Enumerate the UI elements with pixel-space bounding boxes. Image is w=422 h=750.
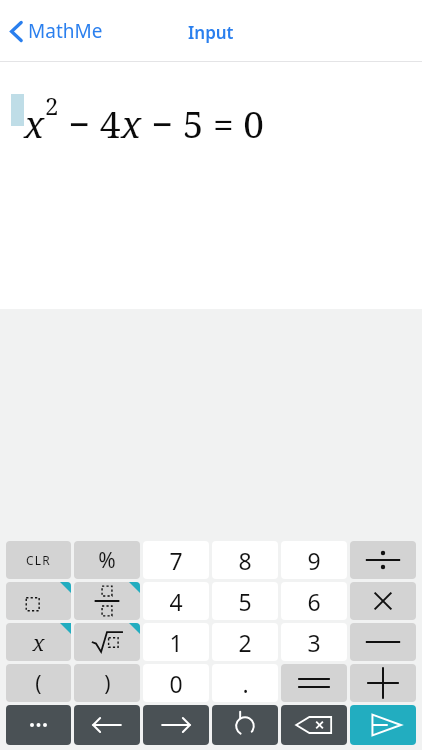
button[interactable]: 3 [281, 623, 347, 661]
button[interactable]: Square [6, 582, 71, 620]
button[interactable]: . [212, 664, 278, 702]
button[interactable]: Minus [350, 623, 416, 661]
button[interactable]: ( [6, 664, 71, 702]
button[interactable]: 6 [281, 582, 347, 620]
button[interactable]: 9 [281, 541, 347, 579]
staticText: 3 [307, 627, 321, 658]
button[interactable]: 1 [143, 623, 209, 661]
button[interactable]: Undo [212, 705, 278, 745]
staticText: CLR [26, 552, 51, 568]
button[interactable]: Plus [350, 664, 416, 702]
staticText: MathMe [28, 18, 103, 44]
staticText: 2 [238, 627, 252, 658]
staticText: − 4 [59, 98, 121, 148]
staticText: 8 [238, 545, 252, 576]
button[interactable]: x [6, 623, 71, 661]
staticText: 9 [307, 545, 321, 576]
button[interactable]: 2 [212, 623, 278, 661]
button[interactable]: % [74, 541, 140, 579]
staticText: Input [188, 21, 234, 44]
button[interactable]: 8 [212, 541, 278, 579]
button[interactable]: 5 [212, 582, 278, 620]
button[interactable]: Left [74, 705, 140, 745]
staticText: 6 [307, 586, 321, 617]
button[interactable]: Backspace [281, 705, 347, 745]
staticText: % [98, 546, 116, 575]
button[interactable]: 7 [143, 541, 209, 579]
button[interactable]: Multiply [350, 582, 416, 620]
staticText: 0 [169, 668, 183, 699]
button[interactable]: Equals [281, 664, 347, 702]
button[interactable]: More [6, 705, 71, 745]
button[interactable]: ) [74, 664, 140, 702]
staticText: x [121, 98, 142, 148]
button[interactable]: Square root [74, 623, 140, 661]
staticText: 2 [45, 89, 59, 122]
staticText: 7 [169, 545, 183, 576]
staticText: . [242, 668, 249, 699]
staticText: ( [35, 669, 42, 698]
staticText: − 5 = 0 [142, 98, 264, 148]
staticText: 1 [169, 627, 183, 658]
staticText: x [32, 627, 45, 657]
button[interactable]: Fraction [74, 582, 140, 620]
button[interactable]: CLR [6, 541, 71, 579]
button[interactable]: 4 [143, 582, 209, 620]
button[interactable]: Right [143, 705, 209, 745]
staticText: 5 [238, 586, 252, 617]
button[interactable]: Submit [350, 705, 416, 745]
button[interactable]: 0 [143, 664, 209, 702]
staticText: x [24, 98, 45, 148]
button[interactable]: MathMe [6, 12, 107, 50]
button[interactable]: Divide [350, 541, 416, 579]
staticText: 4 [169, 586, 183, 617]
staticText: ) [104, 669, 111, 698]
